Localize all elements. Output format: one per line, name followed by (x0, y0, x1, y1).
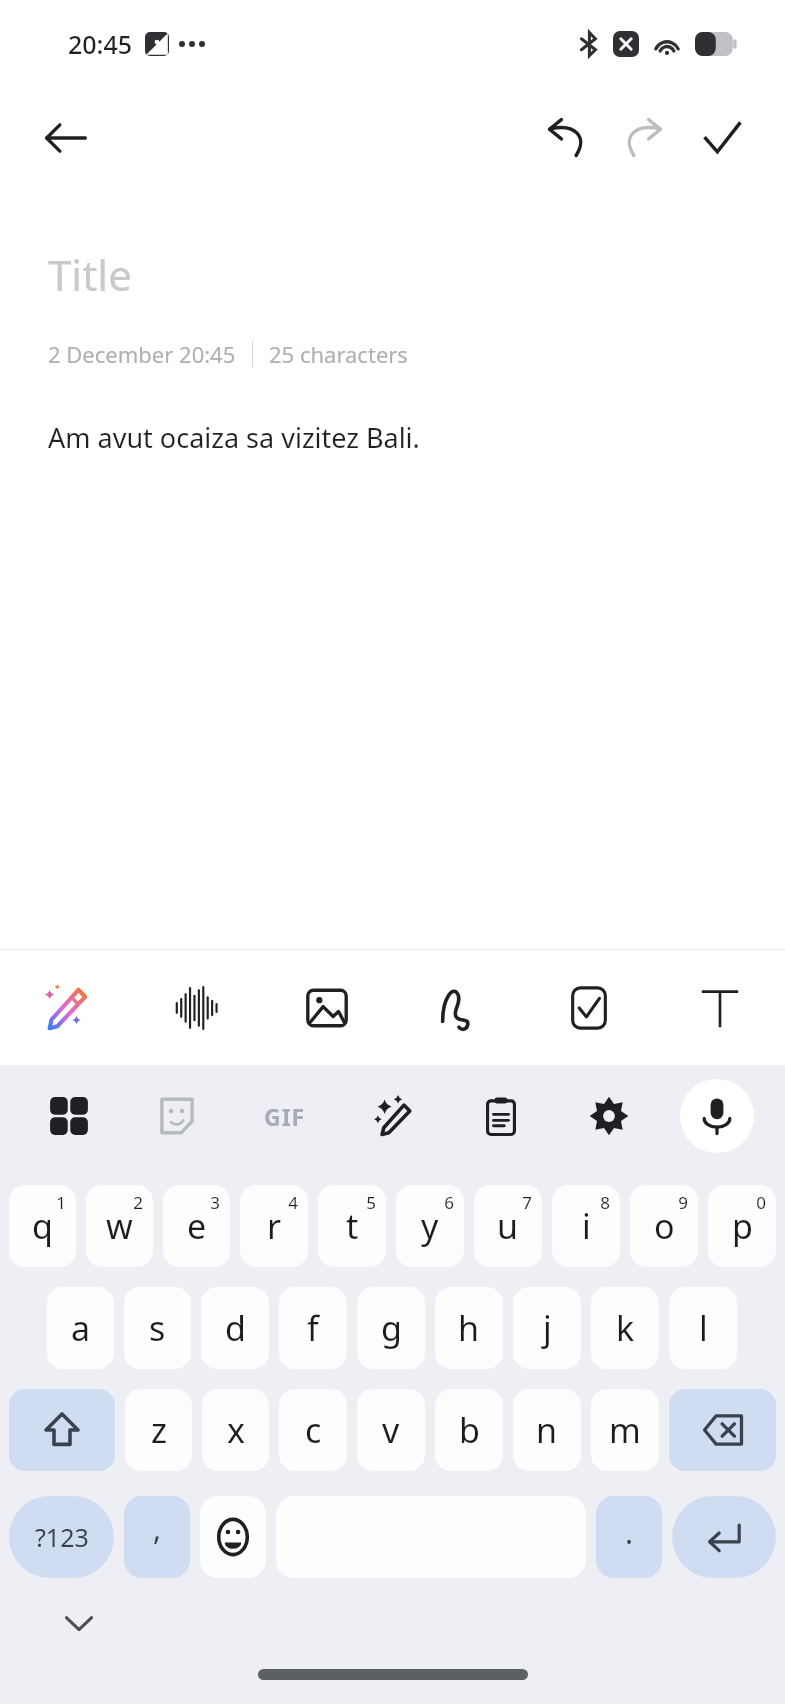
staticText: x (227, 1407, 245, 1453)
staticText: p (732, 1203, 753, 1249)
staticText: e (187, 1203, 207, 1249)
staticText: q (32, 1203, 53, 1249)
staticText: a (71, 1305, 91, 1351)
staticText: 9 (678, 1191, 688, 1214)
button[interactable]: i (552, 1185, 620, 1267)
staticText: . (625, 1512, 634, 1553)
staticText: ?123 (35, 1520, 89, 1554)
button[interactable]: g (357, 1287, 425, 1369)
button[interactable]: Shift (9, 1389, 115, 1471)
button[interactable]: Voice input (663, 1065, 771, 1167)
button[interactable]: Stickers (123, 1065, 231, 1167)
button[interactable]: y (396, 1185, 464, 1267)
button[interactable]: w (86, 1185, 153, 1267)
button[interactable]: Insert image (261, 950, 392, 1065)
staticText: w (106, 1203, 133, 1249)
staticText: GIF (264, 1101, 306, 1132)
button[interactable]: x (202, 1389, 269, 1471)
staticText: 4 (288, 1191, 298, 1214)
button[interactable]: m (591, 1389, 659, 1471)
button[interactable]: . (596, 1496, 662, 1578)
button[interactable]: l (669, 1287, 737, 1369)
button[interactable]: j (513, 1287, 581, 1369)
button[interactable]: ?123 (9, 1496, 114, 1578)
button[interactable]: AI assist (0, 950, 130, 1065)
staticText: 20:45 (68, 27, 133, 61)
staticText: z (151, 1407, 167, 1453)
button[interactable]: q (9, 1185, 76, 1267)
staticText: m (609, 1407, 641, 1453)
button[interactable]: e (163, 1185, 230, 1267)
staticText: d (225, 1305, 246, 1351)
button[interactable]: z (125, 1389, 192, 1471)
staticText: 5 (366, 1191, 376, 1214)
button[interactable]: Enter (672, 1496, 776, 1578)
button[interactable]: r (240, 1185, 308, 1267)
staticText: 25 characters (269, 339, 408, 369)
staticText: n (536, 1407, 558, 1453)
button[interactable]: GIF (231, 1065, 339, 1167)
button[interactable]: Checklist (523, 950, 654, 1065)
button[interactable]: a (47, 1287, 114, 1369)
button[interactable]: Keyboard modes (14, 1065, 123, 1167)
staticText: k (616, 1305, 635, 1351)
button[interactable]: Voice recording (130, 950, 261, 1065)
button[interactable]: , (124, 1496, 190, 1578)
button[interactable]: f (279, 1287, 347, 1369)
button[interactable]: p (708, 1185, 776, 1267)
staticText: r (267, 1203, 282, 1249)
button[interactable]: Redo (605, 99, 683, 177)
staticText: 2 December 20:45 (48, 339, 236, 369)
staticText: l (699, 1305, 708, 1351)
button[interactable]: Draw (392, 950, 523, 1065)
button[interactable]: o (630, 1185, 698, 1267)
staticText: o (654, 1203, 675, 1249)
button[interactable]: n (513, 1389, 581, 1471)
staticText: Am avut ocaiza sa vizitez Bali. (48, 419, 420, 456)
button[interactable]: s (124, 1287, 191, 1369)
button[interactable]: Settings (555, 1065, 663, 1167)
button[interactable]: Emoji (200, 1496, 266, 1578)
button[interactable]: Save (683, 99, 761, 177)
button[interactable]: Back (30, 102, 102, 174)
button[interactable]: v (357, 1389, 425, 1471)
staticText: 6 (444, 1191, 454, 1214)
button[interactable]: c (279, 1389, 347, 1471)
staticText: i (582, 1203, 591, 1249)
staticText: b (459, 1407, 480, 1453)
button[interactable]: Clipboard (447, 1065, 555, 1167)
button[interactable]: Undo (527, 99, 605, 177)
staticText: 1 (56, 1191, 66, 1214)
button[interactable]: b (435, 1389, 503, 1471)
button[interactable]: k (591, 1287, 659, 1369)
staticText: j (543, 1305, 552, 1351)
staticText: v (382, 1407, 400, 1453)
button[interactable]: Text format (654, 950, 785, 1065)
staticText: Title (48, 246, 132, 303)
staticText: 8 (600, 1191, 610, 1214)
staticText: t (346, 1203, 359, 1249)
button[interactable]: Backspace (669, 1389, 776, 1471)
button[interactable]: Hide keyboard (48, 1592, 110, 1654)
button[interactable]: Writing tools (339, 1065, 447, 1167)
button[interactable]: t (318, 1185, 386, 1267)
staticText: h (458, 1305, 480, 1351)
staticText: 2 (133, 1191, 143, 1214)
staticText: f (307, 1305, 319, 1351)
staticText: c (305, 1407, 322, 1453)
staticText: , (153, 1508, 162, 1549)
staticText: g (381, 1305, 402, 1351)
button[interactable]: h (435, 1287, 503, 1369)
button[interactable]: d (201, 1287, 269, 1369)
staticText: 7 (522, 1191, 532, 1214)
staticText: 3 (210, 1191, 220, 1214)
staticText: s (149, 1305, 166, 1351)
staticText: u (497, 1203, 519, 1249)
button[interactable]: u (474, 1185, 542, 1267)
staticText: y (421, 1203, 439, 1249)
staticText: 0 (756, 1191, 766, 1214)
